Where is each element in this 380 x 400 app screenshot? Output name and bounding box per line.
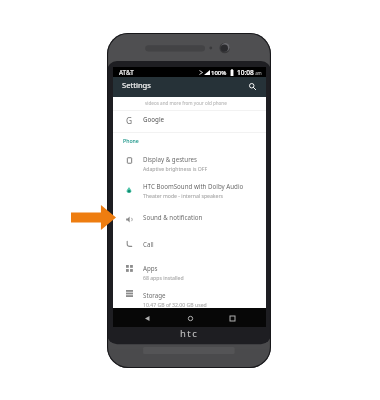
staticText: am [254,70,262,76]
button[interactable]: Home [182,310,198,326]
button[interactable]: Storage [113,286,266,312]
staticText: Apps [143,264,158,272]
staticText: 10.47 GB of 32.00 GB used [143,301,207,308]
staticText: Google [143,115,165,123]
button[interactable]: G [113,106,266,132]
button[interactable]: Display & gestures [113,150,266,176]
staticText: Adaptive brightness is OFF [143,165,208,172]
staticText: Call [143,240,154,248]
staticText: HTC BoomSound with Dolby Audio [143,182,244,190]
staticText: 10:08 [237,68,254,77]
button[interactable]: HTC BoomSound with Dolby Audio [113,177,266,203]
staticText: 68 apps installed [143,274,184,281]
button[interactable]: Call [113,231,266,257]
staticText: AT&T [119,68,134,76]
staticText: Storage [143,291,166,299]
button[interactable]: Apps [113,259,266,285]
staticText: G [126,115,133,125]
staticText: 100% [211,69,227,77]
staticText: Theater mode - internal speakers [143,192,224,199]
staticText: Phone [123,137,139,144]
staticText: videos and more from your old phone [145,100,227,106]
button[interactable]: Recent apps [224,310,240,326]
staticText: Display & gestures [143,155,198,163]
staticText: Settings [122,80,151,90]
button[interactable]: Back [139,310,155,326]
button[interactable]: Search [246,80,259,93]
staticText: htc [180,327,199,340]
staticText: Sound & notification [143,213,203,221]
button[interactable]: Sound & notification [113,204,266,230]
